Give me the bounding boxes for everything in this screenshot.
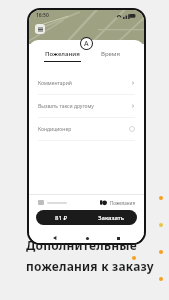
staticText: Пожелания [110, 200, 135, 206]
staticText: Вызвать такси другому [38, 103, 94, 110]
staticText: Дополнительные [26, 237, 137, 253]
staticText: Комментарий [38, 80, 72, 87]
button[interactable]: 81 ₽ [36, 210, 137, 225]
button[interactable]: Menu [35, 24, 45, 34]
button[interactable]: Кондиционер [29, 118, 144, 140]
staticText: Кондиционер [38, 126, 72, 133]
staticText: 16:50 [36, 12, 49, 19]
staticText: Время [101, 50, 120, 58]
button[interactable]: Комментарий [29, 72, 144, 94]
button[interactable]: Время [86, 48, 134, 64]
button[interactable]: Пожелания [39, 48, 86, 64]
button[interactable]: Home [82, 233, 92, 243]
button[interactable]: Вызвать такси другому [29, 95, 144, 117]
staticText: Заказать [98, 214, 125, 222]
staticText: 81 ₽ [55, 214, 67, 222]
staticText: Пожелания [45, 50, 80, 58]
staticText: A [84, 39, 89, 49]
staticText: пожелания к заказу [26, 258, 154, 274]
button[interactable]: Back [50, 233, 60, 243]
button[interactable]: Recent apps [113, 233, 123, 243]
button[interactable]: Пожелания [100, 199, 135, 206]
button[interactable] [38, 200, 67, 205]
